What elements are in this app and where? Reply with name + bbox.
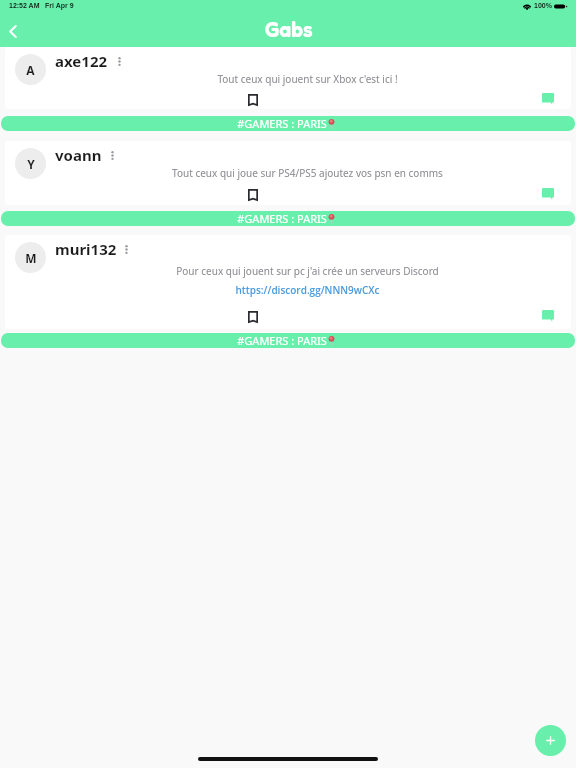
staticText: axe122 xyxy=(55,51,108,67)
button[interactable]: More options xyxy=(117,240,135,258)
button[interactable]: Bookmark xyxy=(243,90,263,109)
button[interactable]: Bookmark xyxy=(243,185,263,205)
button[interactable]: Comments xyxy=(538,89,558,109)
staticText: A xyxy=(26,62,35,78)
staticText: 12:52 AM xyxy=(9,2,40,10)
staticText: Tout ceux qui joue sur PS4/PS5 ajoutez v… xyxy=(172,166,443,180)
button[interactable]: #GAMERS : PARIS xyxy=(1,333,575,348)
button[interactable]: A xyxy=(5,47,571,109)
button[interactable]: #GAMERS : PARIS xyxy=(1,116,575,131)
staticText: Gabs xyxy=(264,17,313,42)
staticText: Fri Apr 9 xyxy=(45,2,74,10)
staticText: Pour ceux qui jouent sur pc j'ai crée un… xyxy=(176,264,439,278)
button[interactable]: More options xyxy=(103,146,121,164)
button[interactable]: Create post xyxy=(535,725,566,756)
button[interactable]: #GAMERS : PARIS xyxy=(1,211,575,226)
button[interactable]: M xyxy=(5,235,571,329)
staticText: Tout ceux qui jouent sur Xbox c'est ici … xyxy=(217,72,398,86)
button[interactable]: Y xyxy=(5,141,571,205)
staticText: 100% xyxy=(534,2,552,10)
button[interactable]: More options xyxy=(110,52,128,70)
staticText: yoann xyxy=(55,145,102,161)
button[interactable]: Comments xyxy=(538,306,558,326)
staticText: https://discord.gg/NNN9wCXc xyxy=(235,283,380,297)
button[interactable]: Comments xyxy=(538,184,558,204)
button[interactable]: Bookmark xyxy=(243,307,263,327)
staticText: muri132 xyxy=(55,239,117,255)
staticText: #GAMERS : PARIS xyxy=(237,211,327,226)
staticText: #GAMERS : PARIS xyxy=(237,116,327,131)
button[interactable]: Back xyxy=(3,21,23,41)
staticText: #GAMERS : PARIS xyxy=(237,333,327,348)
staticText: M xyxy=(25,250,37,266)
staticText: Y xyxy=(27,156,35,172)
